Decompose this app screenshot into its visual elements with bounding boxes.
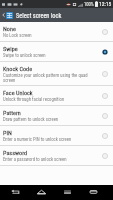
button[interactable]: PIN <box>0 126 113 146</box>
staticText: Enter a password to unlock screen <box>3 157 67 163</box>
button[interactable]: Swipe <box>0 42 113 62</box>
button[interactable]: Password <box>0 146 113 166</box>
staticText: No Lock screen <box>3 33 32 39</box>
staticText: Pattern <box>3 109 21 116</box>
staticText: Swipe to unlock screen <box>3 53 46 59</box>
staticText: 100% <box>84 2 94 7</box>
staticText: Customize your unlock pattern using the … <box>3 73 96 83</box>
staticText: Draw pattern to unlock screen <box>3 117 59 123</box>
button[interactable]: Home <box>32 185 51 200</box>
staticText: Enter a numeric PIN to unlock screen <box>3 137 72 143</box>
button[interactable]: Face Unlock <box>0 86 113 106</box>
button[interactable]: Pattern <box>0 106 113 126</box>
button[interactable]: None <box>0 22 113 42</box>
staticText: Swipe <box>3 45 18 52</box>
button[interactable]: Back <box>6 185 25 200</box>
staticText: 12:15 <box>99 1 112 8</box>
staticText: PIN <box>3 129 12 136</box>
button[interactable]: Navigate up <box>0 8 113 22</box>
staticText: Knock Code <box>3 65 33 72</box>
staticText: Select screen lock <box>16 12 62 19</box>
button[interactable]: Menu <box>58 185 77 200</box>
staticText: Face Unlock <box>3 89 33 96</box>
button[interactable]: Knock Code <box>0 62 113 86</box>
staticText: Unlock through facial recognition <box>3 97 65 103</box>
staticText: Password <box>3 149 28 156</box>
button[interactable]: Recent apps <box>84 185 103 200</box>
staticText: None <box>3 25 16 32</box>
